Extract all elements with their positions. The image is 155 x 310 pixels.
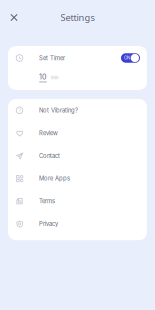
staticText: Settings [60,11,94,24]
staticText: ON [124,55,130,61]
staticText: ? [18,107,20,114]
staticText: More Apps [39,175,70,182]
button[interactable]: Terms [8,190,147,212]
staticText: Not Vibrating? [39,107,78,114]
staticText: min [51,75,59,80]
button[interactable]: Close [5,8,23,26]
button[interactable]: Timer on [121,53,140,63]
staticText: Terms [39,198,55,205]
staticText: Privacy [39,220,58,227]
staticText: Review [39,129,58,137]
staticText: 10 [39,73,47,81]
button[interactable]: More Apps [8,167,147,190]
button[interactable]: Contact [8,144,147,167]
button[interactable]: Review [8,122,147,144]
staticText: Contact [39,152,60,159]
staticText: Set Timer [39,54,65,62]
button[interactable]: Privacy [8,212,147,235]
button[interactable]: ? [8,99,147,122]
